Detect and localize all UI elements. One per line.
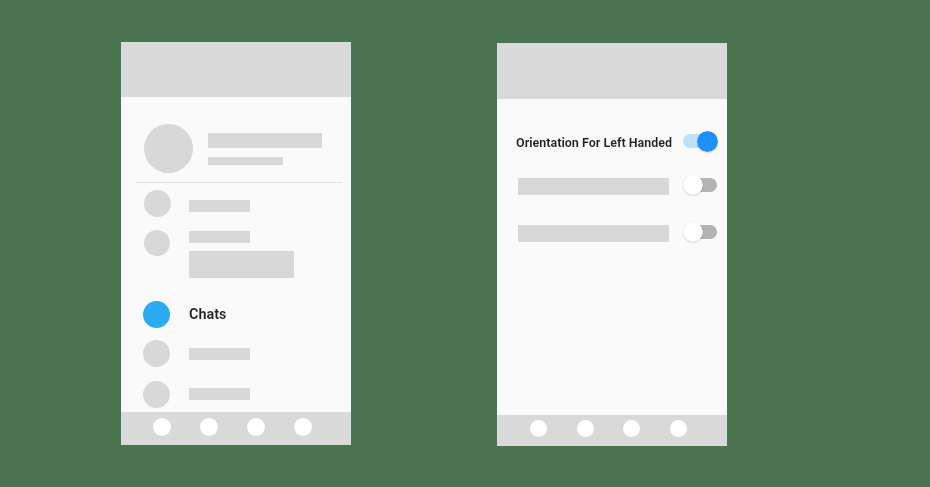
button[interactable]: Home [139,412,186,445]
button[interactable]: List item 1 [121,186,351,224]
button[interactable]: List item 3 [121,336,351,374]
button[interactable]: Home [515,415,562,446]
staticText: Orientation For Left Handed [516,135,673,150]
button[interactable]: Search [186,412,233,445]
button[interactable]: Search [562,415,609,446]
button[interactable]: List item 4 [121,376,351,412]
button[interactable]: Orientation For Left Handed [509,125,719,157]
button[interactable]: Chats [129,295,309,333]
button[interactable]: Setting 3 [509,217,719,249]
button[interactable]: Notifications [233,412,280,445]
button[interactable]: Profile [655,415,702,446]
button[interactable]: Setting 2 [509,170,719,202]
button[interactable]: Notifications [608,415,655,446]
button[interactable]: Profile [280,412,327,445]
button[interactable]: Account header [121,106,351,181]
staticText: Chats [189,306,227,323]
button[interactable]: List item 2 [121,226,351,280]
